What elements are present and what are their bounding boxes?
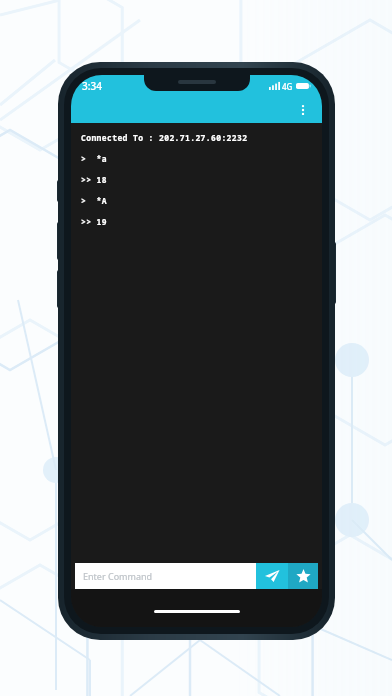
button[interactable]: Favorite — [288, 563, 318, 589]
staticText: 3:34 — [82, 79, 102, 93]
staticText: Connected To : 202.71.27.60:2232 — [81, 132, 248, 143]
button[interactable]: More options — [290, 97, 316, 123]
staticText: >> 19 — [81, 216, 107, 227]
button[interactable]: Enter Command — [75, 563, 256, 589]
staticText: > *A — [81, 195, 107, 206]
staticText: Enter Command — [83, 570, 153, 582]
staticText: > *a — [81, 153, 107, 164]
staticText: 4G — [282, 81, 293, 92]
staticText: >> 18 — [81, 174, 107, 185]
button[interactable]: Send — [256, 563, 288, 589]
